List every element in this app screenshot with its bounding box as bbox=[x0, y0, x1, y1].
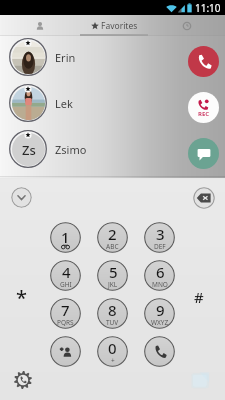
staticText: 9 bbox=[156, 300, 165, 320]
button[interactable]: Lek bbox=[0, 80, 225, 126]
staticText: 0 bbox=[108, 338, 117, 358]
button[interactable]: Settings bbox=[14, 371, 32, 389]
button[interactable]: 4 bbox=[50, 260, 81, 291]
button[interactable]: Backspace bbox=[193, 187, 215, 209]
button[interactable]: 9 bbox=[144, 298, 175, 329]
staticText: 6 bbox=[156, 262, 165, 282]
button[interactable]: 0 bbox=[97, 336, 128, 367]
staticText: * bbox=[16, 284, 27, 311]
button[interactable]: Record call bbox=[188, 92, 219, 123]
button[interactable]: 6 bbox=[144, 260, 175, 291]
staticText: Zs bbox=[22, 141, 36, 159]
staticText: 3 bbox=[156, 224, 165, 244]
button[interactable]: 2 bbox=[97, 222, 128, 253]
button[interactable]: Favorites bbox=[80, 15, 148, 36]
staticText: 2 bbox=[108, 224, 117, 244]
staticText: Zsimo bbox=[55, 142, 87, 157]
staticText: MNO bbox=[152, 280, 168, 289]
button[interactable]: Recents bbox=[148, 15, 225, 36]
staticText: GHI bbox=[60, 280, 72, 289]
button[interactable]: Call bbox=[188, 46, 219, 77]
staticText: Lek bbox=[55, 96, 73, 111]
staticText: TUV bbox=[106, 318, 119, 327]
staticText: DEF bbox=[154, 242, 166, 251]
button[interactable]: Hide keypad bbox=[11, 187, 32, 208]
staticText: 1 bbox=[61, 227, 70, 247]
button[interactable]: 3 bbox=[144, 222, 175, 253]
button[interactable]: Message bbox=[188, 138, 219, 169]
button[interactable]: Zs bbox=[0, 126, 225, 172]
staticText: 11:10 bbox=[195, 1, 221, 15]
button[interactable]: Call bbox=[144, 336, 175, 367]
button[interactable]: Erin bbox=[0, 34, 225, 80]
staticText: PQRS bbox=[57, 318, 74, 327]
staticText: REC bbox=[198, 110, 210, 118]
staticText: # bbox=[194, 287, 204, 307]
staticText: Favorites bbox=[101, 20, 138, 32]
staticText: + bbox=[111, 356, 115, 365]
button[interactable]: 5 bbox=[97, 260, 128, 291]
button[interactable]: 1 bbox=[50, 222, 81, 253]
staticText: 4 bbox=[62, 262, 71, 282]
button[interactable]: 8 bbox=[97, 298, 128, 329]
staticText: Erin bbox=[55, 50, 76, 65]
staticText: 8 bbox=[108, 300, 117, 320]
button[interactable]: 7 bbox=[50, 298, 81, 329]
button[interactable]: Contacts bbox=[0, 15, 80, 36]
staticText: WXYZ bbox=[151, 318, 169, 327]
staticText: JKL bbox=[108, 280, 118, 289]
staticText: 5 bbox=[109, 262, 118, 282]
button[interactable]: Add contact bbox=[50, 336, 81, 367]
staticText: 7 bbox=[61, 300, 70, 320]
staticText: ABC bbox=[106, 242, 119, 251]
